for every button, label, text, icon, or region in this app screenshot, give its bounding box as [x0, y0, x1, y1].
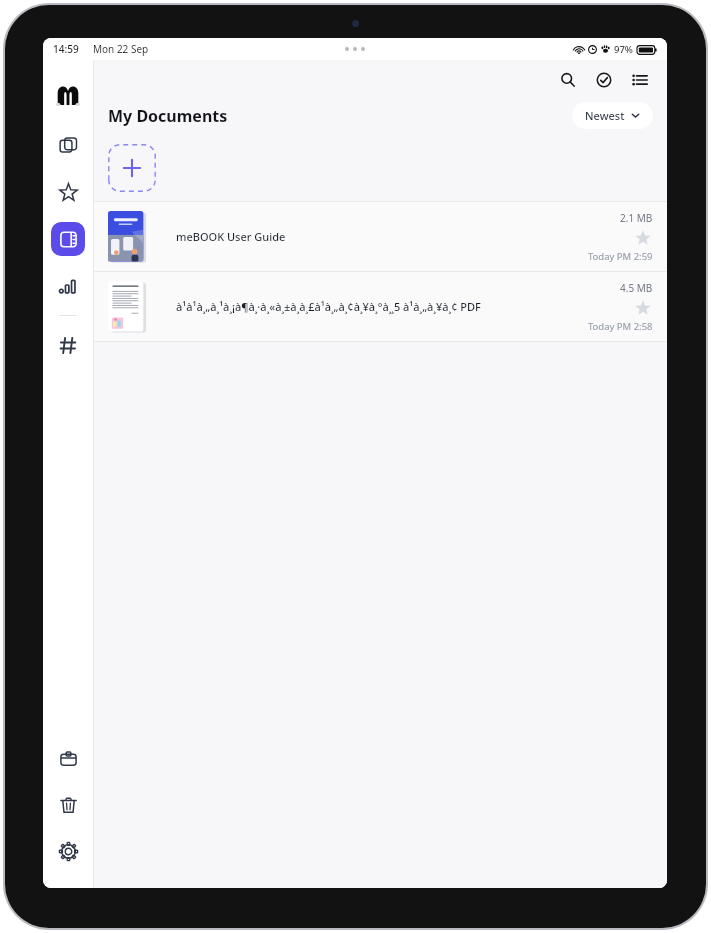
button[interactable]: Archive	[51, 742, 85, 776]
button[interactable]: Newest	[572, 102, 653, 129]
staticText: 4.5 MB	[620, 281, 653, 295]
button[interactable]: meBOOK User Guide	[94, 202, 667, 271]
staticText: Today PM 2:58	[588, 320, 653, 333]
button[interactable]: Select	[591, 67, 617, 93]
button[interactable]: Favorite	[633, 228, 653, 248]
button[interactable]: Trash	[51, 788, 85, 822]
button[interactable]: Favorite	[633, 298, 653, 318]
staticText: 2.1 MB	[620, 211, 653, 225]
button[interactable]: Favorites	[51, 175, 85, 209]
staticText: My Documents	[108, 105, 228, 127]
button[interactable]: App logo	[51, 78, 85, 112]
button[interactable]: Add document	[108, 144, 156, 192]
button[interactable]: Search	[555, 67, 581, 93]
button[interactable]: Settings	[51, 834, 85, 868]
staticText: Mon 22 Sep	[93, 42, 149, 56]
button[interactable]: View options	[627, 67, 653, 93]
button[interactable]: à¹à¹à¸„à¸¹à¸¡à¶à¸·à¸«à¸±à¸à¸£à¹à¸„à¸¢à¸¥…	[94, 272, 667, 341]
staticText: à¹à¹à¸„à¸¹à¸¡à¶à¸·à¸«à¸±à¸à¸£à¹à¸„à¸¢à¸¥…	[176, 299, 576, 314]
staticText: meBOOK User Guide	[176, 229, 576, 244]
staticText: 14:59	[53, 42, 79, 56]
staticText: Newest	[585, 108, 625, 123]
button[interactable]: Tags	[51, 328, 85, 362]
button[interactable]: Statistics	[51, 269, 85, 303]
staticText: Today PM 2:59	[588, 250, 653, 263]
staticText: 97%	[614, 43, 633, 56]
button[interactable]: My Documents	[51, 222, 85, 256]
button[interactable]: Documents	[51, 128, 85, 162]
